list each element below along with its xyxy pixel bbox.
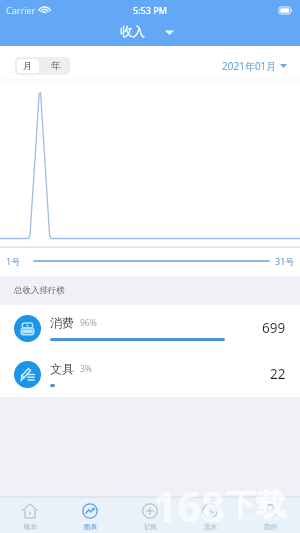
staticText: 699 (262, 319, 286, 337)
staticText: 年 (51, 60, 61, 72)
staticText: 1号 (6, 255, 21, 267)
staticText: 3% (80, 363, 92, 375)
staticText: 我的 (264, 523, 277, 531)
staticText: 总收入排行榜 (14, 285, 65, 296)
button[interactable]: 收入 (117, 25, 183, 41)
button[interactable]: 2021年01月 (222, 59, 287, 73)
staticText: 5:53 PM (133, 4, 167, 16)
button[interactable]: 月 (17, 59, 39, 73)
staticText: 22 (270, 365, 286, 383)
staticText: 账本 (24, 523, 37, 531)
staticText: 31号 (275, 255, 295, 267)
staticText: 文具 (50, 361, 74, 376)
staticText: 月 (23, 60, 33, 72)
button[interactable]: 记账 (120, 497, 180, 533)
staticText: 96% (80, 317, 97, 329)
staticText: 记账 (144, 523, 157, 531)
staticText: 下载 (226, 486, 286, 524)
staticText: 收入 (120, 24, 145, 40)
button[interactable]: 图表 (60, 497, 120, 533)
staticText: 2021年01月 (222, 59, 277, 73)
button[interactable]: 我的 (240, 497, 300, 533)
staticText: 消费 (50, 315, 74, 330)
button[interactable]: 消费 (0, 305, 300, 351)
staticText: 图表 (84, 523, 97, 531)
staticText: 168 (153, 477, 226, 533)
button[interactable]: 年 (41, 57, 70, 75)
staticText: down.168.com (240, 513, 289, 523)
button[interactable]: 流水 (180, 497, 240, 533)
staticText: Carrier (6, 4, 36, 16)
staticText: 流水 (204, 523, 217, 531)
button[interactable]: 文具 (0, 351, 300, 397)
button[interactable]: 账本 (0, 497, 60, 533)
